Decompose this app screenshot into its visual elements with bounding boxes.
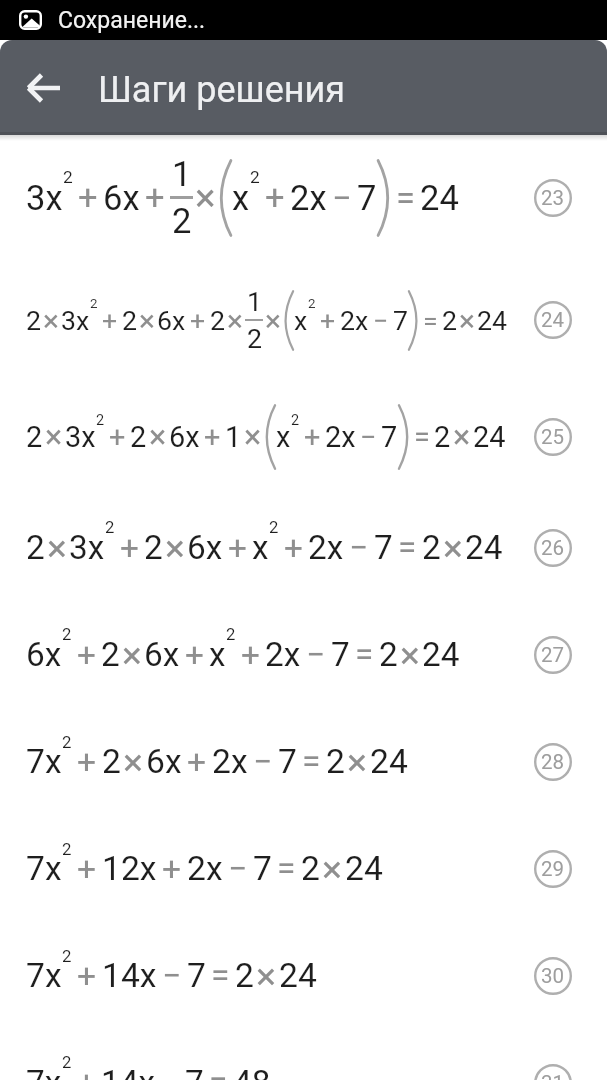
- staticText: 2x: [187, 849, 223, 888]
- staticText: 24: [473, 420, 506, 454]
- staticText: 24: [345, 849, 383, 888]
- staticText: 7: [185, 1063, 204, 1080]
- staticText: =: [423, 305, 438, 336]
- staticText: 2: [96, 412, 105, 429]
- staticText: −: [332, 178, 352, 218]
- staticText: Сохранение...: [58, 7, 206, 34]
- staticText: Шаги решения: [98, 69, 346, 111]
- staticText: ×: [244, 418, 262, 456]
- staticText: =: [209, 1063, 228, 1080]
- staticText: −: [373, 305, 389, 336]
- staticText: +: [187, 742, 207, 781]
- staticText: 6x: [26, 635, 62, 674]
- staticText: x: [209, 635, 226, 674]
- staticText: +: [77, 956, 97, 995]
- staticText: 2x: [290, 178, 327, 218]
- staticText: ×: [265, 303, 281, 338]
- staticText: 1: [172, 154, 192, 194]
- staticText: +: [77, 742, 97, 781]
- staticText: 6x: [146, 742, 182, 781]
- staticText: 2: [26, 420, 43, 454]
- staticText: +: [77, 1063, 96, 1080]
- staticText: −: [349, 528, 369, 567]
- staticText: 24: [477, 305, 507, 336]
- staticText: 24: [370, 742, 408, 781]
- staticText: 2: [26, 305, 41, 336]
- staticText: 2: [130, 420, 147, 454]
- staticText: x: [276, 420, 291, 454]
- staticText: 30: [541, 964, 565, 988]
- staticText: x: [252, 528, 269, 567]
- staticText: =: [414, 420, 430, 454]
- staticText: 6x: [157, 305, 186, 336]
- staticText: =: [398, 528, 417, 567]
- staticText: 2: [62, 946, 72, 966]
- staticText: x: [294, 305, 308, 336]
- staticText: 7: [253, 849, 272, 888]
- staticText: 3x: [26, 178, 63, 218]
- staticText: +: [109, 420, 126, 454]
- staticText: 2: [379, 635, 398, 674]
- staticText: 2: [172, 201, 192, 241]
- staticText: 2x: [265, 635, 301, 674]
- staticText: x: [232, 178, 250, 218]
- staticText: +: [78, 178, 98, 218]
- staticText: +: [228, 528, 247, 567]
- staticText: 7: [357, 178, 377, 218]
- staticText: 2: [90, 296, 98, 312]
- button[interactable]: 2: [0, 260, 607, 380]
- staticText: 1: [247, 286, 262, 317]
- staticText: 7: [187, 956, 206, 995]
- button[interactable]: 6x: [0, 601, 607, 708]
- staticText: 2: [102, 742, 121, 781]
- staticText: 2: [226, 625, 236, 645]
- staticText: ×: [400, 633, 420, 677]
- staticText: 2: [269, 518, 279, 538]
- staticText: 24: [465, 528, 503, 567]
- staticText: 14x: [101, 1063, 155, 1080]
- staticText: −: [228, 849, 248, 888]
- staticText: 24: [279, 956, 317, 995]
- staticText: 7x: [26, 742, 62, 781]
- staticText: −: [253, 742, 273, 781]
- staticText: 2: [62, 625, 72, 645]
- staticText: +: [204, 420, 221, 454]
- staticText: 24: [422, 635, 460, 674]
- staticText: 2: [291, 412, 300, 429]
- staticText: 2: [326, 742, 345, 781]
- staticText: 2: [122, 305, 137, 336]
- staticText: 3x: [65, 420, 96, 454]
- staticText: 27: [541, 643, 565, 667]
- staticText: 6x: [169, 420, 200, 454]
- staticText: 2: [62, 1053, 72, 1073]
- staticText: ×: [122, 633, 142, 677]
- button[interactable]: 2: [0, 494, 607, 601]
- staticText: =: [302, 742, 321, 781]
- staticText: +: [304, 420, 321, 454]
- button[interactable]: 7x: [0, 815, 607, 922]
- staticText: =: [277, 849, 296, 888]
- staticText: 2x: [308, 528, 344, 567]
- staticText: 24: [541, 308, 565, 332]
- staticText: 48: [233, 1063, 271, 1080]
- staticText: 3x: [69, 528, 105, 567]
- button[interactable]: 2: [0, 380, 607, 494]
- staticText: +: [320, 305, 336, 336]
- staticText: 2x: [340, 305, 369, 336]
- staticText: 2: [63, 167, 73, 187]
- button[interactable]: 7x: [0, 922, 607, 1029]
- staticText: 2: [235, 956, 254, 995]
- button[interactable]: 7x: [0, 1029, 607, 1080]
- staticText: =: [355, 635, 374, 674]
- staticText: 2: [422, 528, 441, 567]
- staticText: +: [190, 305, 206, 336]
- staticText: 2: [210, 305, 225, 336]
- button[interactable]: 7x: [0, 708, 607, 815]
- button[interactable]: 3x: [0, 135, 607, 260]
- staticText: 14x: [102, 956, 157, 995]
- staticText: 2: [144, 528, 163, 567]
- button[interactable]: [0, 40, 88, 135]
- staticText: −: [360, 420, 377, 454]
- staticText: ×: [453, 418, 471, 456]
